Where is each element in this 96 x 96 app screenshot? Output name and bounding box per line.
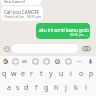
button[interactable]: Stickers xyxy=(10,56,20,67)
button[interactable]: Emoji xyxy=(41,56,52,67)
button[interactable]: u xyxy=(56,67,66,81)
staticText: g xyxy=(44,83,49,93)
button[interactable]: p xyxy=(86,67,96,81)
button[interactable]: Settings xyxy=(52,56,63,67)
button[interactable]: e xyxy=(18,67,27,81)
staticText: t xyxy=(40,69,43,79)
staticText: w xyxy=(11,69,17,79)
button[interactable]: Emoji xyxy=(2,44,11,53)
button[interactable] xyxy=(12,44,78,53)
staticText: i xyxy=(70,69,72,79)
button[interactable]: h xyxy=(51,81,61,95)
button[interactable]: j xyxy=(61,81,71,95)
staticText: u xyxy=(59,69,64,79)
staticText: h xyxy=(54,83,59,93)
button[interactable]: o xyxy=(76,67,86,81)
button[interactable]: d xyxy=(22,81,31,95)
button[interactable]: s xyxy=(13,81,22,95)
staticText: k xyxy=(74,83,78,93)
button[interactable]: t xyxy=(36,67,46,81)
button[interactable]: g xyxy=(41,81,51,95)
staticText: y xyxy=(49,69,53,79)
staticText: GIF xyxy=(22,60,28,64)
button[interactable]: Clipboard xyxy=(30,56,41,67)
button[interactable]: q xyxy=(0,67,9,81)
staticText: s xyxy=(16,83,20,93)
button[interactable]: f xyxy=(31,81,41,95)
staticText: d xyxy=(24,83,29,93)
staticText: j xyxy=(65,83,67,93)
staticText: Site-Cancel xyxy=(4,0,25,4)
staticText: Call you CANOFF xyxy=(4,9,40,15)
button[interactable]: r xyxy=(27,67,36,81)
button[interactable]: y xyxy=(46,67,56,81)
button[interactable]: More options xyxy=(74,56,85,67)
button[interactable]: Voice input xyxy=(85,56,96,67)
button[interactable]: i xyxy=(66,67,76,81)
staticText: f xyxy=(35,83,38,93)
staticText: 09:39 pm xyxy=(70,33,84,37)
staticText: p xyxy=(89,69,94,79)
button[interactable]: a xyxy=(4,81,13,95)
button[interactable]: Site-Cancel xyxy=(1,0,41,5)
button[interactable]: Camera xyxy=(82,44,91,53)
button[interactable]: k xyxy=(71,81,81,95)
staticText: 08:29 pm xyxy=(27,15,41,19)
staticText: Thanks all kin xyxy=(4,15,25,19)
staticText: aku ini sonti kamu grab xyxy=(39,27,89,33)
staticText: ••• xyxy=(77,59,82,64)
staticText: r xyxy=(30,69,33,79)
staticText: e xyxy=(21,69,25,79)
staticText: l xyxy=(85,83,87,93)
button[interactable]: Theme xyxy=(63,56,74,67)
staticText: a xyxy=(7,83,11,93)
staticText: q xyxy=(2,69,7,79)
button[interactable]: w xyxy=(9,67,18,81)
button[interactable]: Call you CANOFF xyxy=(1,6,43,21)
button[interactable]: aku ini sonti kamu grab xyxy=(36,23,90,39)
staticText: o xyxy=(79,69,84,79)
button[interactable]: l xyxy=(81,81,91,95)
button[interactable]: Google search xyxy=(0,56,10,67)
button[interactable]: GIF xyxy=(20,56,30,67)
